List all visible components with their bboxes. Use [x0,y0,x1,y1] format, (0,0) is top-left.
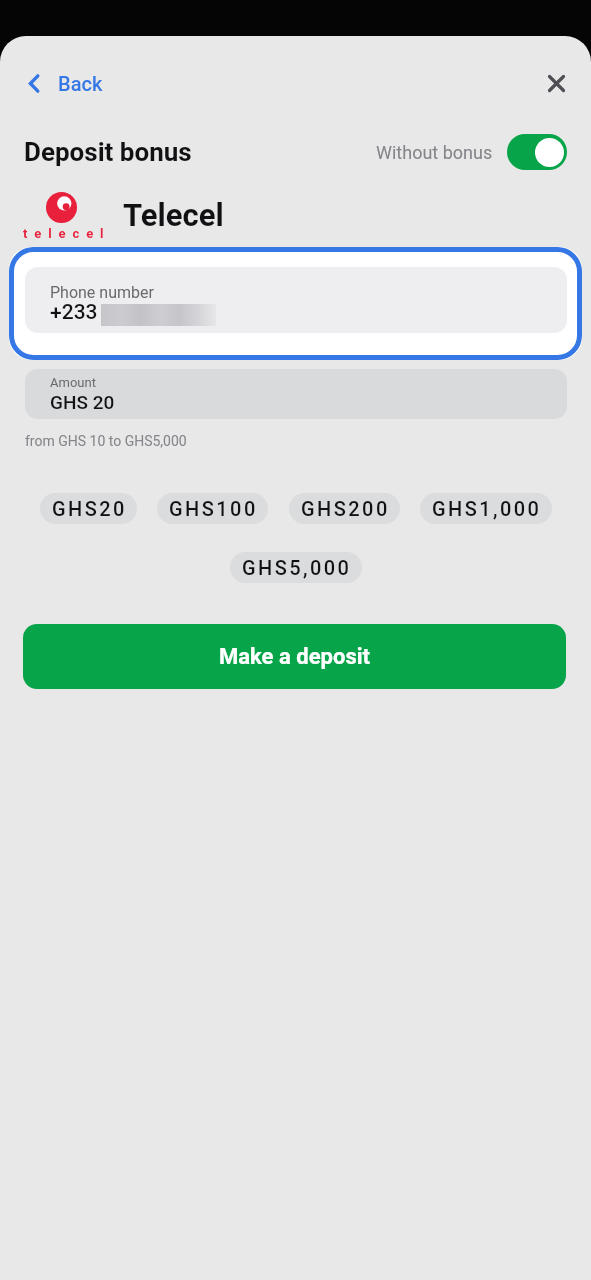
staticText: Without bonus [376,142,493,163]
staticText: GHS1,000 [432,497,542,520]
button[interactable]: Amount [25,369,567,419]
staticText: Make a deposit [219,644,370,670]
staticText: Amount [50,375,96,390]
button[interactable]: Close [540,67,572,99]
staticText: Back [58,72,103,95]
staticText: GHS100 [169,497,258,520]
staticText: GHS20 [52,497,127,520]
staticText: GHS 20 [50,391,115,413]
staticText: Telecel [123,197,224,233]
staticText: from GHS 10 to GHS5,000 [25,433,187,449]
button[interactable]: Make a deposit [23,624,566,689]
button[interactable]: GHS20 [40,493,137,524]
staticText: +233 [50,300,98,325]
button[interactable]: Bonus toggle [507,134,567,170]
button[interactable]: GHS1,000 [420,493,552,524]
button[interactable]: GHS200 [289,493,400,524]
staticText: GHS200 [301,497,390,520]
staticText: GHS5,000 [242,556,352,579]
button[interactable]: Back [24,65,107,102]
staticText: Phone number [50,283,154,302]
button[interactable]: GHS100 [157,493,268,524]
staticText: Deposit bonus [24,137,192,167]
staticText: telecel [23,226,111,240]
button[interactable]: GHS5,000 [230,552,362,583]
button[interactable]: Phone number [9,247,582,360]
